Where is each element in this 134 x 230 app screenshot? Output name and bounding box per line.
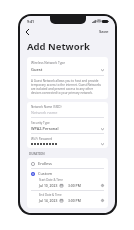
button[interactable]: Custom — [31, 171, 104, 176]
staticText: Guest — [31, 67, 101, 72]
button[interactable]: Save — [93, 27, 115, 37]
staticText: 3:00 PM — [68, 198, 81, 203]
button[interactable] — [31, 142, 104, 145]
staticText: Security Type — [31, 121, 50, 125]
button[interactable]: Endless — [31, 161, 104, 166]
button[interactable]: Back — [20, 27, 35, 37]
staticText: DURATION — [29, 152, 45, 156]
staticText: Jul 14, 2023 — [39, 198, 58, 203]
button[interactable]: Guest — [31, 67, 104, 72]
button[interactable]: Pick time — [101, 199, 104, 202]
staticText: Save — [99, 29, 109, 35]
staticText: Jul 10, 2023 — [39, 183, 58, 188]
staticText: Custom — [38, 171, 53, 176]
staticText: Endless — [38, 161, 52, 166]
staticText: WPA2-Personal — [31, 126, 101, 131]
staticText: Network name — [31, 110, 58, 115]
staticText: End Date & Time — [39, 193, 62, 197]
staticText: Wi-Fi Password — [31, 137, 53, 141]
staticText: 3:00 PM — [68, 183, 81, 188]
staticText: Wireless Network Type — [31, 61, 66, 65]
staticText: A Guest Network allows you to host and p… — [31, 79, 104, 95]
staticText: Start Date & Time — [39, 178, 63, 182]
staticText: Network Name (SSID) — [31, 105, 62, 109]
button[interactable]: Pick time — [101, 184, 104, 187]
staticText: Add Network — [27, 40, 90, 53]
button[interactable]: Network name — [31, 110, 104, 115]
button[interactable]: Pick date — [60, 184, 63, 187]
button[interactable]: WPA2-Personal — [31, 126, 104, 131]
staticText: 9:41 — [27, 19, 35, 24]
button[interactable]: Pick date — [60, 199, 63, 202]
